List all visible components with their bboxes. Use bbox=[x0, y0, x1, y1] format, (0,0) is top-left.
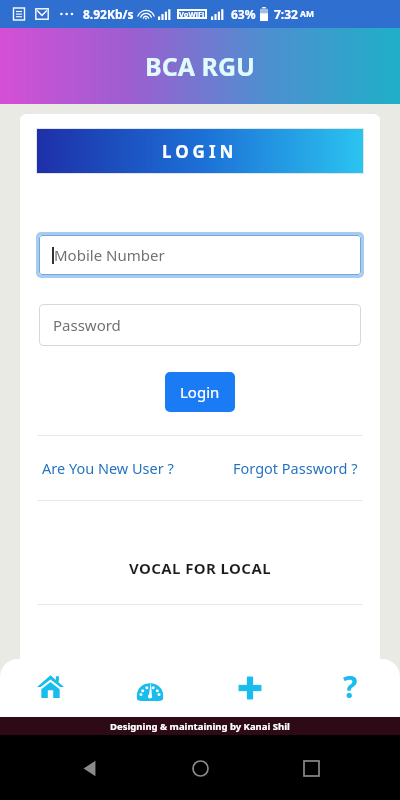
button[interactable]: Login bbox=[165, 372, 235, 412]
button[interactable]: Home bbox=[0, 659, 100, 717]
button[interactable]: Add bbox=[200, 659, 300, 717]
staticText: ? bbox=[343, 666, 358, 707]
button[interactable]: Mobile Number bbox=[39, 235, 361, 275]
staticText: VoWiFi bbox=[179, 9, 205, 19]
button[interactable]: Home bbox=[178, 746, 222, 790]
button[interactable]: Password bbox=[39, 304, 361, 346]
button[interactable]: Forgot Password ? bbox=[233, 458, 358, 478]
staticText: 63% bbox=[231, 6, 256, 22]
staticText: VOCAL FOR LOCAL bbox=[129, 558, 271, 578]
button[interactable]: Are You New User ? bbox=[42, 458, 174, 478]
button[interactable]: Back bbox=[67, 746, 111, 790]
staticText: 8.92Kb/s bbox=[83, 6, 134, 22]
button[interactable]: Help bbox=[300, 659, 400, 717]
staticText: Login bbox=[180, 382, 220, 402]
button[interactable]: Recents bbox=[289, 746, 333, 790]
staticText: Forgot Password ? bbox=[233, 458, 358, 478]
staticText: Mobile Number bbox=[54, 245, 165, 265]
button[interactable]: Dashboard bbox=[100, 659, 200, 717]
button[interactable]: LOGIN bbox=[36, 128, 364, 174]
staticText: Designing & maintaining by Kanai Shil bbox=[110, 720, 290, 733]
staticText: BCA RGU bbox=[145, 49, 255, 83]
staticText: LOGIN bbox=[162, 140, 238, 163]
staticText: Password bbox=[53, 315, 121, 335]
staticText: Are You New User ? bbox=[42, 458, 174, 478]
staticText: 7:32 bbox=[274, 6, 298, 22]
staticText: AM bbox=[300, 8, 314, 20]
